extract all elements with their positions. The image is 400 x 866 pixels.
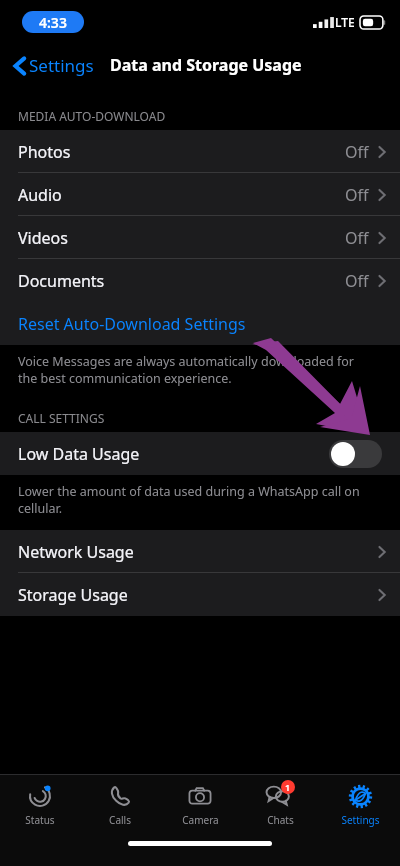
button[interactable]: Status bbox=[0, 775, 80, 833]
button[interactable]: Documents bbox=[0, 259, 400, 302]
button[interactable]: Audio bbox=[0, 173, 400, 216]
staticText: LTE bbox=[335, 14, 355, 30]
staticText: Network Usage bbox=[18, 541, 134, 563]
staticText: Voice Messages are always automatically … bbox=[18, 353, 370, 386]
staticText: Settings bbox=[341, 813, 380, 827]
staticText: Chats bbox=[267, 813, 294, 827]
button[interactable]: Reset Auto-Download Settings bbox=[0, 302, 400, 345]
staticText: MEDIA AUTO-DOWNLOAD bbox=[18, 108, 166, 124]
button[interactable]: Settings bbox=[12, 50, 96, 81]
staticText: Off bbox=[345, 270, 369, 292]
staticText: Status bbox=[25, 813, 55, 827]
staticText: Settings bbox=[29, 54, 94, 77]
button[interactable]: Videos bbox=[0, 216, 400, 259]
staticText: Photos bbox=[18, 141, 71, 163]
button[interactable]: Settings bbox=[320, 775, 400, 833]
button[interactable]: Photos bbox=[0, 130, 400, 173]
staticText: Reset Auto-Download Settings bbox=[18, 313, 246, 335]
staticText: Off bbox=[345, 141, 369, 163]
button[interactable]: 1 bbox=[240, 775, 320, 833]
staticText: Low Data Usage bbox=[18, 443, 140, 465]
button[interactable]: Low Data Usage toggle, off bbox=[329, 440, 382, 468]
staticText: 1 bbox=[285, 781, 291, 793]
staticText: Camera bbox=[182, 813, 219, 827]
staticText: Videos bbox=[18, 227, 68, 249]
button[interactable]: Calls bbox=[80, 775, 160, 833]
staticText: Calls bbox=[109, 813, 131, 827]
button[interactable]: Network Usage bbox=[0, 530, 400, 573]
button[interactable]: Low Data Usage bbox=[0, 432, 400, 475]
button[interactable]: Storage Usage bbox=[0, 573, 400, 616]
staticText: Documents bbox=[18, 270, 105, 292]
button[interactable]: Camera bbox=[160, 775, 240, 833]
staticText: 4:33 bbox=[39, 13, 67, 32]
staticText: Lower the amount of data used during a W… bbox=[18, 483, 370, 516]
staticText: Audio bbox=[18, 184, 62, 206]
staticText: Storage Usage bbox=[18, 584, 128, 606]
staticText: Off bbox=[345, 184, 369, 206]
staticText: Data and Storage Usage bbox=[110, 54, 302, 76]
staticText: Off bbox=[345, 227, 369, 249]
staticText: CALL SETTINGS bbox=[18, 410, 105, 426]
